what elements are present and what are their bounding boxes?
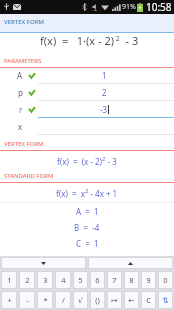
staticText: C (146, 295, 151, 305)
button[interactable]: / (56, 292, 70, 308)
staticText: 1 (102, 70, 107, 81)
button[interactable]: () (91, 292, 104, 308)
staticText: x (18, 121, 23, 132)
staticText: 8 (129, 275, 134, 285)
button[interactable]: 6 (91, 272, 104, 288)
staticText: ⇅ (162, 296, 169, 305)
button[interactable]: ← (125, 292, 138, 308)
staticText: 2 (25, 275, 30, 285)
staticText: PARAMETERS (4, 57, 42, 65)
button[interactable]: + (2, 292, 16, 308)
staticText: + (7, 295, 12, 305)
staticText: f(x) = 1·(x - 2) 2 - 3 (40, 33, 139, 48)
button[interactable]: 2 (20, 272, 34, 288)
button[interactable]: 5 (74, 272, 87, 288)
button[interactable]: - (20, 292, 34, 308)
staticText: 7 (112, 275, 117, 285)
staticText: - (26, 295, 29, 305)
button[interactable]: * (38, 292, 52, 308)
staticText: A = 1 (76, 206, 99, 217)
button[interactable]: A (0, 68, 174, 84)
staticText: f(x) = (x - 2)2 - 3 (57, 155, 117, 166)
staticText: ← (128, 296, 135, 305)
button[interactable]: ⇅ (159, 292, 172, 308)
staticText: f(x) = x2 - 4x + 1 (56, 187, 118, 198)
staticText: * (43, 295, 48, 305)
button[interactable]: 0 (159, 272, 172, 288)
staticText: B = -4 (74, 222, 100, 233)
button[interactable]: √ (74, 292, 87, 308)
staticText: 2 (102, 87, 107, 98)
staticText: VERTEX FORM (4, 18, 44, 26)
button[interactable]: 1 (2, 272, 16, 288)
button[interactable]: 9 (142, 272, 155, 288)
staticText: 91% (122, 2, 136, 12)
staticText: ↦ (111, 296, 118, 305)
staticText: A (17, 70, 23, 81)
staticText: VERTEX FORM (4, 140, 44, 148)
staticText: 9 (146, 275, 151, 285)
staticText: 1 (7, 275, 12, 285)
button[interactable]: x (0, 118, 174, 135)
staticText: STANDARD FORM (4, 172, 54, 180)
staticText: -3 (100, 104, 108, 115)
button[interactable]: Next field (2, 258, 85, 268)
button[interactable]: r (0, 101, 174, 118)
button[interactable]: p (0, 84, 174, 101)
staticText: 0 (163, 275, 168, 285)
button[interactable]: ↦ (108, 292, 121, 308)
button[interactable]: 7 (108, 272, 121, 288)
staticText: r (19, 104, 23, 115)
button[interactable]: Previous field (89, 258, 172, 268)
button[interactable]: C (142, 292, 155, 308)
button[interactable]: 3 (38, 272, 52, 288)
staticText: / (62, 295, 65, 305)
staticText: p (18, 87, 23, 98)
staticText: 5 (78, 275, 83, 285)
button[interactable]: 8 (125, 272, 138, 288)
staticText: 6 (95, 275, 100, 285)
staticText: () (95, 295, 100, 305)
staticText: 10:58 (146, 0, 172, 14)
staticText: 3 (43, 275, 48, 285)
staticText: 4 (61, 275, 66, 285)
button[interactable]: 4 (56, 272, 70, 288)
staticText: C = 1 (76, 238, 99, 249)
staticText: √ (78, 296, 83, 305)
